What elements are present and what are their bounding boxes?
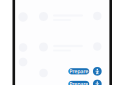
button[interactable]: Prepare	[68, 68, 89, 74]
staticText: Prepare	[69, 80, 88, 85]
button[interactable]: Accessibility options	[93, 80, 102, 85]
button[interactable]: Accessibility options	[93, 67, 102, 76]
button[interactable]: Prepare	[68, 81, 89, 85]
staticText: Prepare	[69, 68, 88, 75]
